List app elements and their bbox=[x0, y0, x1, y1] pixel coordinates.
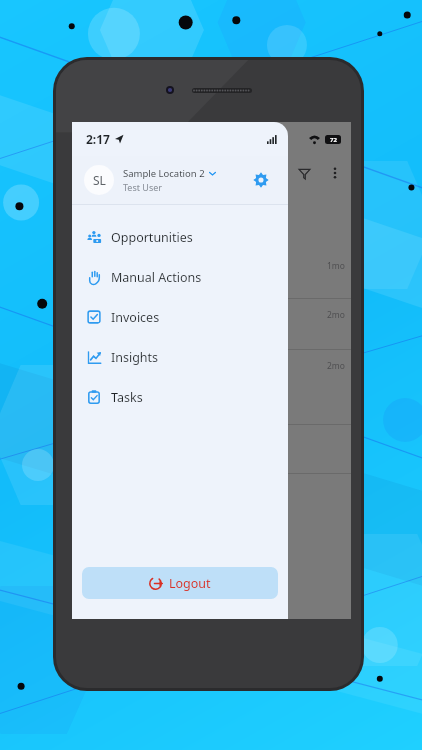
staticText: 1mo bbox=[327, 260, 345, 272]
button[interactable]: Invoices bbox=[72, 297, 288, 337]
staticText: Opportunities bbox=[111, 229, 193, 246]
button[interactable]: Logout bbox=[82, 567, 278, 599]
staticText: 2mo bbox=[327, 309, 345, 321]
button[interactable]: Insights bbox=[72, 337, 288, 377]
staticText: Sample Location 2 bbox=[123, 167, 205, 180]
button[interactable]: SL bbox=[72, 156, 288, 204]
staticText: 72 bbox=[330, 136, 337, 144]
button[interactable]: Opportunities bbox=[72, 217, 288, 257]
staticText: Insights bbox=[111, 349, 159, 366]
button[interactable]: Settings bbox=[246, 165, 276, 195]
staticText: Invoices bbox=[111, 309, 160, 326]
staticText: 2mo bbox=[327, 360, 345, 372]
button[interactable]: Tasks bbox=[72, 377, 288, 417]
staticText: ow … bbox=[74, 274, 96, 286]
staticText: 2:17 bbox=[86, 131, 110, 147]
staticText: Manual Actions bbox=[111, 269, 202, 286]
staticText: Tasks bbox=[111, 389, 143, 406]
staticText: Logout bbox=[169, 575, 211, 592]
staticText: Level, bbox=[74, 260, 98, 272]
staticText: SL bbox=[93, 172, 106, 188]
button[interactable]: Manual Actions bbox=[72, 257, 288, 297]
staticText: Test User bbox=[123, 181, 163, 193]
